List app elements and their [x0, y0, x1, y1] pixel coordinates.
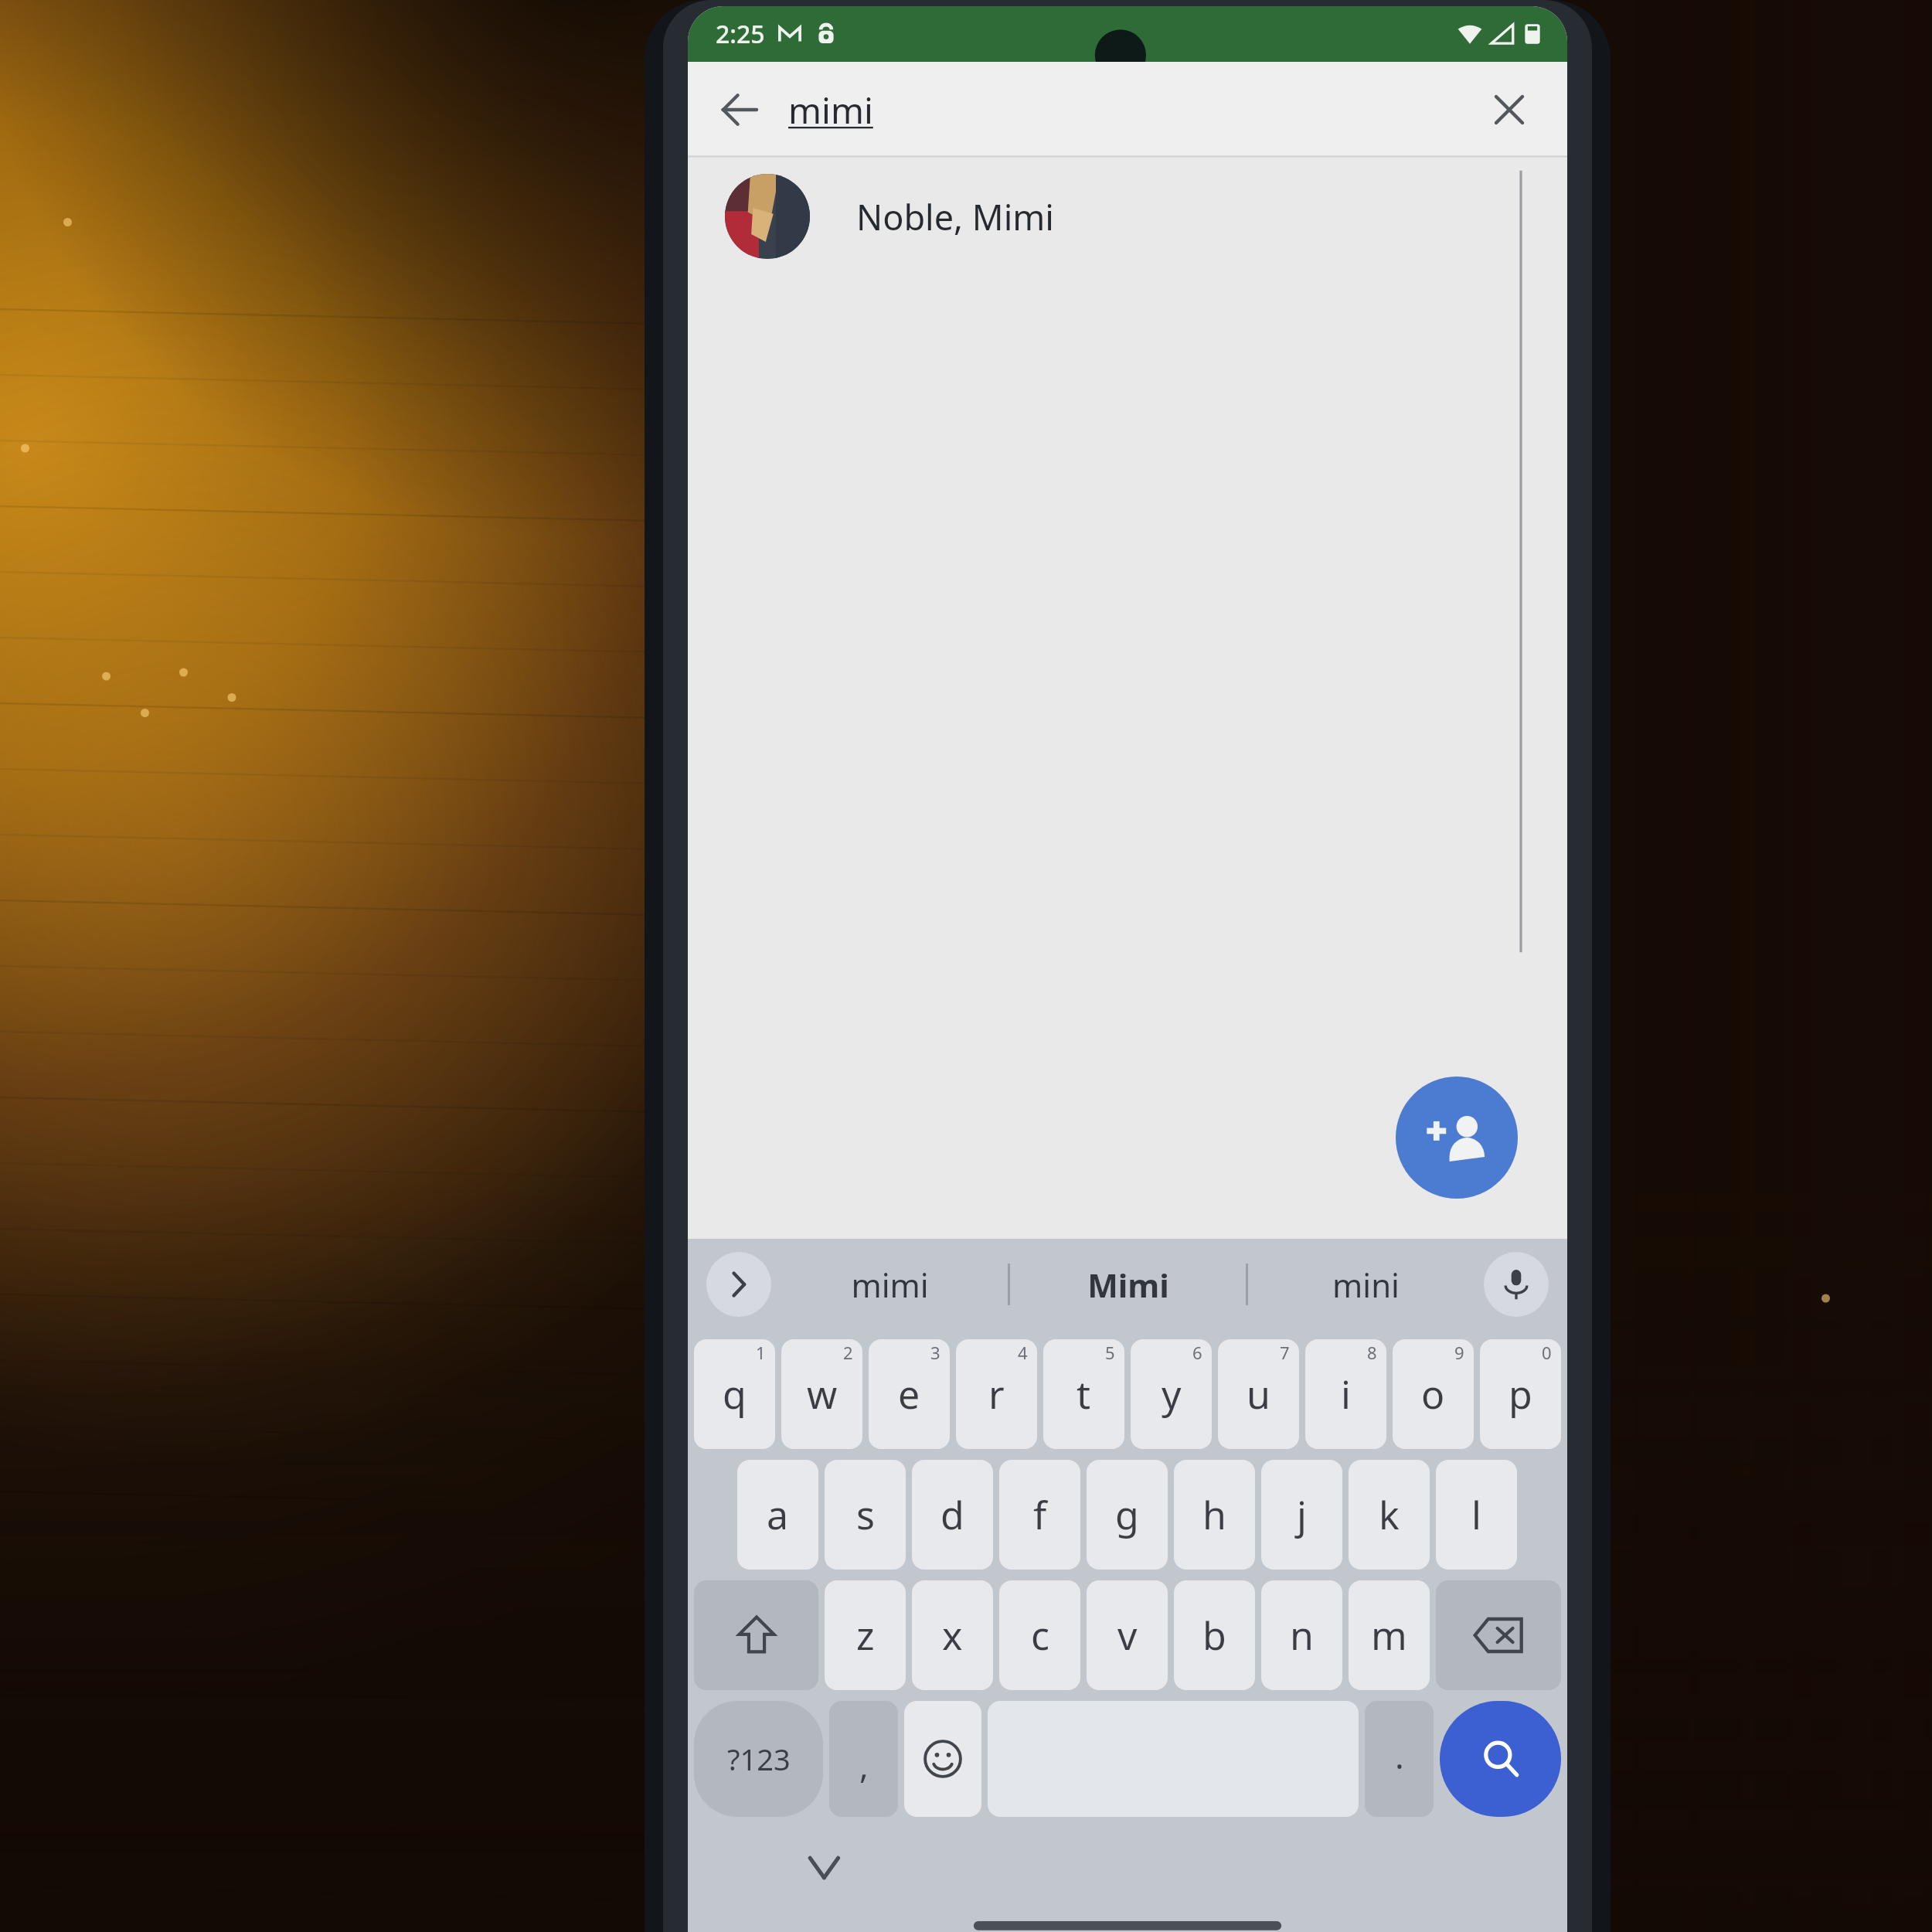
staticText: y: [1162, 1368, 1182, 1420]
staticText: mimi: [788, 86, 873, 134]
staticText: 8: [1367, 1341, 1377, 1364]
staticText: Noble, Mimi: [856, 193, 1054, 240]
button[interactable]: s: [825, 1460, 906, 1570]
button[interactable]: ,: [829, 1701, 898, 1817]
button[interactable]: mimi: [788, 62, 1473, 158]
button[interactable]: Voice input: [1484, 1252, 1549, 1317]
staticText: l: [1471, 1488, 1481, 1541]
button[interactable]: u: [1218, 1339, 1299, 1449]
staticText: u: [1247, 1368, 1270, 1420]
button[interactable]: More suggestions: [706, 1252, 771, 1317]
button[interactable]: r: [956, 1339, 1037, 1449]
button[interactable]: x: [912, 1580, 993, 1690]
button[interactable]: Noble, Mimi: [688, 158, 1567, 275]
button[interactable]: n: [1261, 1580, 1342, 1690]
button[interactable]: k: [1349, 1460, 1430, 1570]
staticText: 2: [843, 1341, 853, 1364]
staticText: Mimi: [1087, 1263, 1169, 1307]
button[interactable]: z: [825, 1580, 906, 1690]
button[interactable]: Back: [703, 73, 776, 146]
staticText: ?123: [727, 1739, 791, 1779]
button[interactable]: Backspace: [1436, 1580, 1561, 1690]
staticText: h: [1202, 1488, 1226, 1541]
staticText: 4: [1018, 1341, 1028, 1364]
staticText: v: [1117, 1609, 1138, 1662]
button[interactable]: y: [1131, 1339, 1212, 1449]
staticText: .: [1395, 1733, 1404, 1779]
staticText: s: [856, 1488, 875, 1541]
staticText: 0: [1542, 1341, 1552, 1364]
button[interactable]: Add contact: [1396, 1077, 1518, 1199]
button[interactable]: h: [1174, 1460, 1255, 1570]
button[interactable]: .: [1365, 1701, 1434, 1817]
button[interactable]: c: [999, 1580, 1080, 1690]
button[interactable]: e: [869, 1339, 950, 1449]
staticText: f: [1033, 1488, 1047, 1541]
staticText: r: [988, 1368, 1005, 1420]
button[interactable]: g: [1087, 1460, 1168, 1570]
staticText: i: [1341, 1368, 1351, 1420]
button[interactable]: l: [1436, 1460, 1517, 1570]
button[interactable]: o: [1393, 1339, 1474, 1449]
staticText: 9: [1454, 1341, 1464, 1364]
button[interactable]: b: [1174, 1580, 1255, 1690]
staticText: g: [1115, 1488, 1139, 1541]
button[interactable]: m: [1349, 1580, 1430, 1690]
button[interactable]: a: [737, 1460, 818, 1570]
button[interactable]: d: [912, 1460, 993, 1570]
staticText: t: [1077, 1368, 1091, 1420]
button[interactable]: ?123: [694, 1701, 823, 1817]
staticText: ,: [859, 1742, 869, 1788]
button[interactable]: mimi: [771, 1239, 1008, 1330]
staticText: 3: [930, 1341, 940, 1364]
button[interactable]: j: [1261, 1460, 1342, 1570]
button[interactable]: i: [1305, 1339, 1386, 1449]
staticText: d: [940, 1488, 964, 1541]
staticText: 5: [1105, 1341, 1115, 1364]
staticText: m: [1371, 1609, 1407, 1662]
staticText: 2:25: [716, 17, 765, 51]
staticText: x: [942, 1609, 963, 1662]
staticText: mini: [1332, 1263, 1400, 1307]
staticText: c: [1031, 1609, 1049, 1662]
staticText: e: [898, 1368, 920, 1420]
staticText: q: [723, 1368, 747, 1420]
staticText: p: [1509, 1368, 1532, 1420]
button[interactable]: mini: [1248, 1239, 1484, 1330]
button[interactable]: Clear search: [1473, 73, 1546, 146]
staticText: k: [1379, 1488, 1400, 1541]
button[interactable]: v: [1087, 1580, 1168, 1690]
staticText: o: [1421, 1368, 1445, 1420]
button[interactable]: f: [999, 1460, 1080, 1570]
staticText: 6: [1192, 1341, 1202, 1364]
button[interactable]: q: [694, 1339, 775, 1449]
staticText: 7: [1280, 1341, 1290, 1364]
staticText: w: [807, 1368, 838, 1420]
staticText: a: [767, 1488, 789, 1541]
button[interactable]: w: [781, 1339, 862, 1449]
staticText: z: [856, 1609, 875, 1662]
staticText: j: [1297, 1488, 1307, 1541]
button[interactable]: Mimi: [1010, 1239, 1246, 1330]
staticText: mimi: [851, 1263, 929, 1307]
button[interactable]: p: [1480, 1339, 1561, 1449]
button[interactable]: Emoji: [904, 1701, 981, 1817]
staticText: n: [1290, 1609, 1314, 1662]
staticText: 1: [756, 1341, 766, 1364]
button[interactable]: t: [1043, 1339, 1124, 1449]
button[interactable]: Search: [1440, 1701, 1561, 1817]
staticText: b: [1202, 1609, 1226, 1662]
button[interactable]: Shift: [694, 1580, 818, 1690]
